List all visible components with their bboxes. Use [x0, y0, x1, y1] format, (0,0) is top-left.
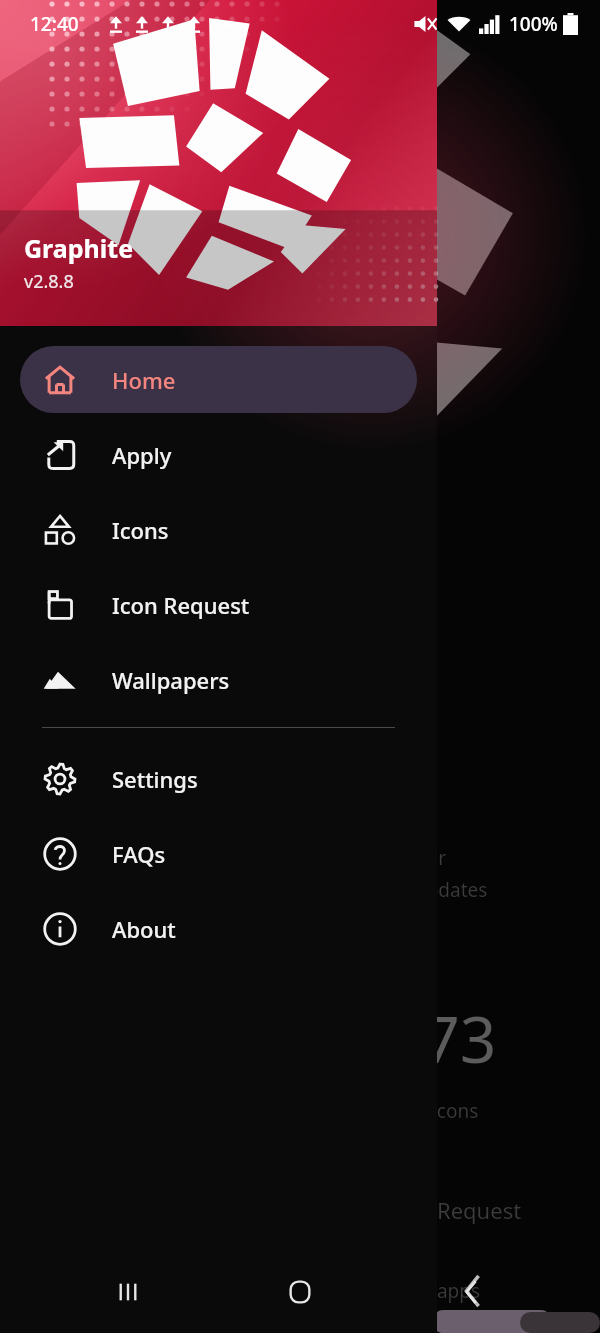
staticText: Icons: [112, 515, 169, 545]
staticText: 100%: [509, 11, 558, 37]
button[interactable]: FAQs: [20, 820, 417, 887]
button[interactable]: Apply: [20, 421, 417, 488]
button[interactable]: Home: [20, 346, 417, 413]
button[interactable]: Settings: [20, 745, 417, 812]
button[interactable]: Recent apps: [100, 1264, 156, 1320]
button[interactable]: Back: [444, 1264, 500, 1320]
staticText: Icon Request: [112, 590, 250, 620]
staticText: Settings: [112, 764, 198, 794]
staticText: All apps: [410, 1278, 481, 1304]
staticText: v2.8.8: [24, 269, 74, 294]
button[interactable]: Wallpapers: [20, 646, 417, 713]
button[interactable]: Icon Request: [20, 571, 417, 638]
staticText: Wallpapers: [112, 665, 230, 695]
button[interactable]: About: [20, 895, 417, 962]
staticText: Graphite: [24, 231, 134, 265]
staticText: Tap to craft your: [300, 845, 446, 871]
staticText: About: [112, 914, 176, 944]
staticText: own icons. 2 updates: [300, 877, 488, 903]
button[interactable]: Icons: [20, 496, 417, 563]
staticText: Request: [437, 1195, 522, 1225]
staticText: Home: [112, 365, 176, 395]
staticText: Apply: [112, 440, 172, 470]
staticText: 3873: [350, 995, 497, 1082]
button[interactable]: Home: [272, 1264, 328, 1320]
staticText: 12:40: [30, 11, 79, 37]
staticText: FAQs: [112, 839, 166, 869]
staticText: Custom icons: [358, 1098, 479, 1124]
